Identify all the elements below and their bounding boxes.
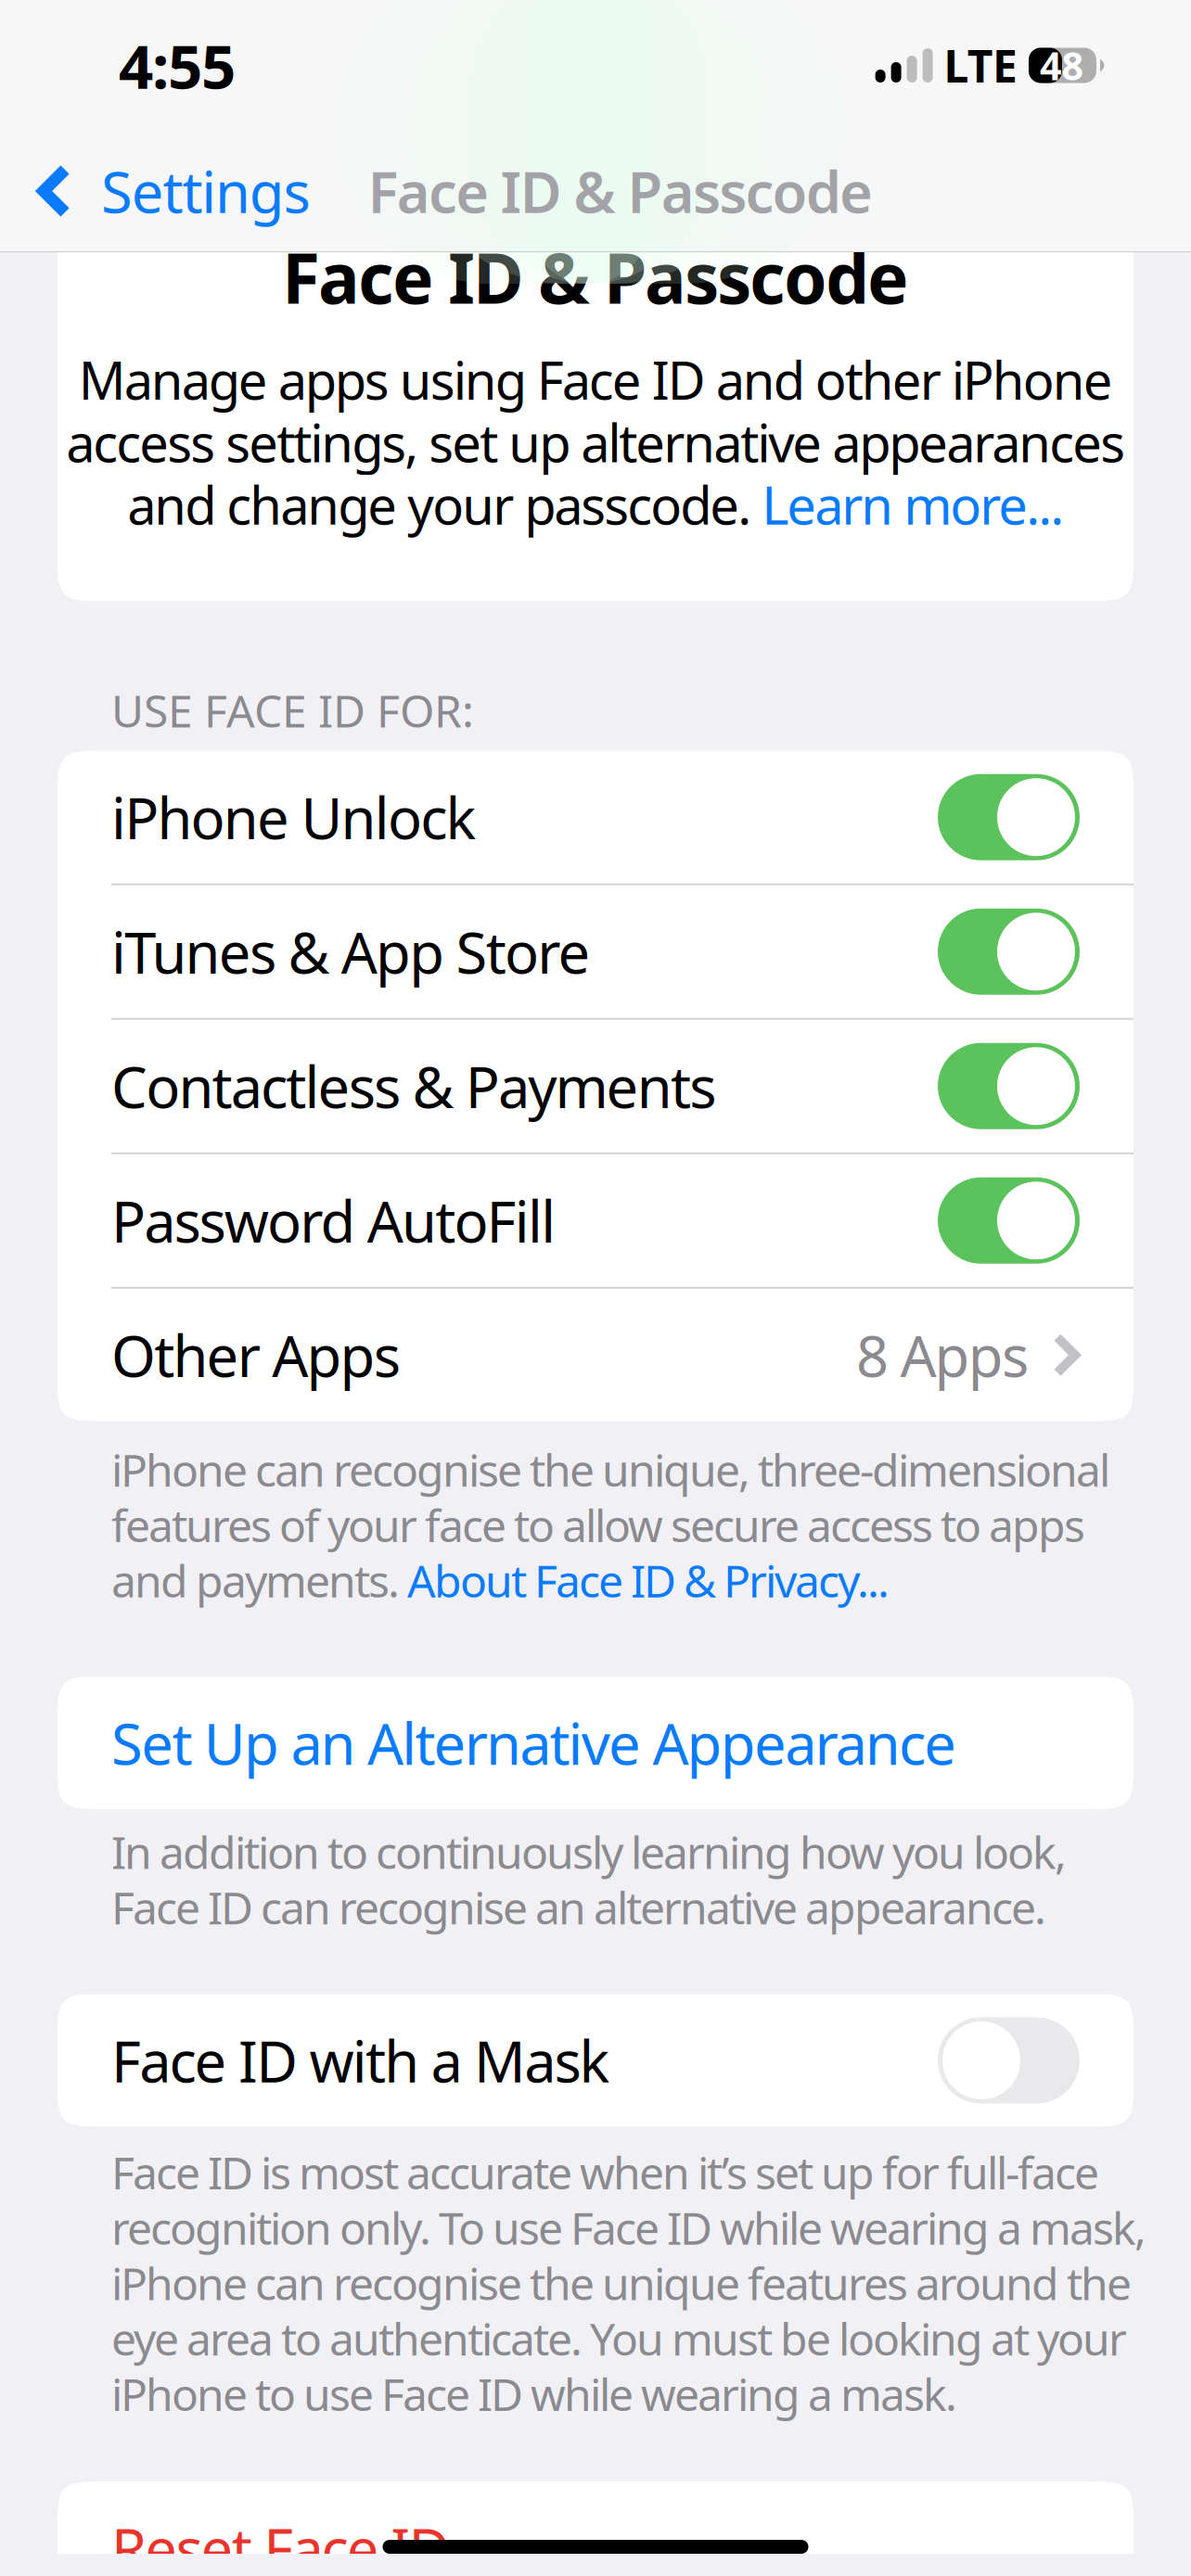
- staticText: Manage apps using Face ID and other iPho…: [66, 345, 1125, 539]
- button[interactable]: iTunes & App Store: [58, 885, 1133, 1018]
- staticText: Face ID & Passcode: [368, 153, 873, 229]
- staticText: 4:55: [119, 25, 236, 106]
- staticText: LTE: [944, 36, 1018, 95]
- staticText: Set Up an Alternative Appearance: [111, 1705, 957, 1780]
- staticText: 48: [1040, 40, 1084, 91]
- staticText: iPhone can recognise the unique, three-d…: [111, 1440, 1110, 1610]
- staticText: Reset Face ID: [111, 2510, 450, 2576]
- button[interactable]: Settings: [37, 153, 310, 229]
- button[interactable]: Contactless & Payments: [58, 1020, 1133, 1152]
- staticText: iTunes & App Store: [111, 914, 590, 989]
- button[interactable]: Password AutoFill: [58, 1154, 1133, 1287]
- staticText: Face ID with a Mask: [111, 2023, 610, 2098]
- staticText: In addition to continuously learning how…: [111, 1822, 1067, 1937]
- staticText: Face ID & Passcode: [282, 231, 909, 323]
- button[interactable]: Reset Face ID: [58, 2482, 1133, 2576]
- button[interactable]: Face ID with a Mask: [58, 1994, 1133, 2127]
- button[interactable]: Other Apps: [58, 1289, 1133, 1421]
- staticText: iPhone Unlock: [111, 779, 476, 855]
- button[interactable]: Set Up an Alternative Appearance: [58, 1677, 1133, 1809]
- staticText: 8 Apps: [856, 1317, 1029, 1393]
- staticText: Contactless & Payments: [111, 1048, 716, 1124]
- staticText: Settings: [101, 153, 310, 229]
- staticText: Face ID is most accurate when it’s set u…: [111, 2142, 1146, 2423]
- staticText: Other Apps: [111, 1317, 401, 1393]
- staticText: Password AutoFill: [111, 1183, 556, 1258]
- button[interactable]: iPhone Unlock: [58, 751, 1133, 883]
- staticText: USE FACE ID FOR:: [111, 681, 474, 740]
